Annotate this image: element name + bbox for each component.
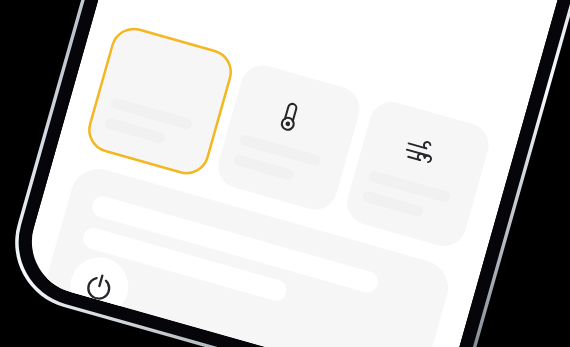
button[interactable]: Notifications <box>346 166 392 212</box>
button[interactable]: Power <box>84 122 134 172</box>
button[interactable]: Lighting tile <box>58 90 170 160</box>
button[interactable]: Continue <box>313 216 367 262</box>
